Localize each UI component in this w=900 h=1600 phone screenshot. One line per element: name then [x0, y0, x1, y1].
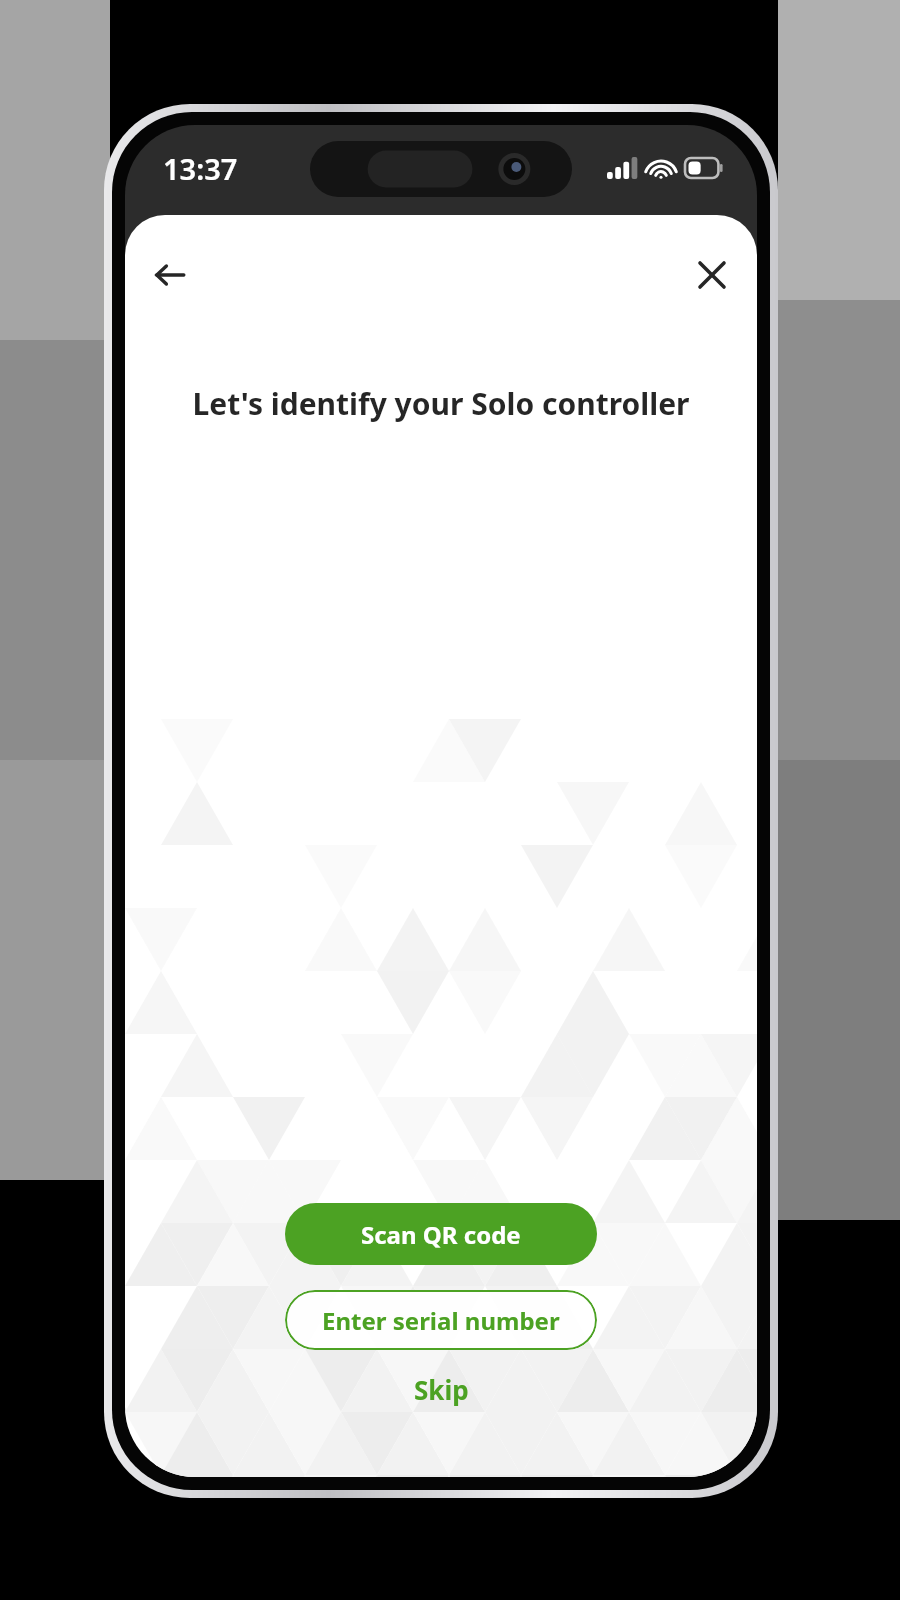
- button[interactable]: Back: [139, 244, 201, 306]
- staticText: Let's identify your Solo controller: [149, 383, 733, 424]
- staticText: 13:37: [163, 149, 238, 188]
- button[interactable]: Scan QR code: [285, 1203, 597, 1265]
- button[interactable]: Close: [681, 244, 743, 306]
- staticText: Enter serial number: [322, 1304, 560, 1337]
- button[interactable]: Enter serial number: [285, 1290, 597, 1350]
- staticText: Scan QR code: [361, 1218, 521, 1251]
- staticText: Skip: [414, 1372, 469, 1407]
- button[interactable]: Skip: [388, 1364, 495, 1415]
